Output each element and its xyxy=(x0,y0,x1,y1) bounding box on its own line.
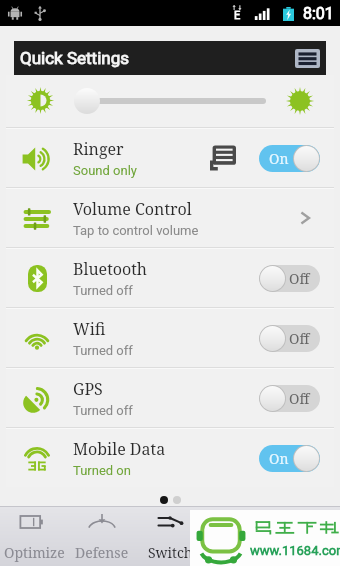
staticText: Turned off xyxy=(73,343,133,358)
staticText: Off xyxy=(289,389,310,408)
button[interactable]: Bluetooth xyxy=(6,249,334,307)
staticText: Turned off xyxy=(73,403,133,418)
staticText: Bluetooth xyxy=(73,258,148,280)
staticText: Turned on xyxy=(73,463,131,478)
button[interactable]: Optimize xyxy=(0,512,68,562)
button[interactable]: Menu xyxy=(295,49,320,68)
staticText: Sound only xyxy=(73,163,137,178)
staticText: 8:01 xyxy=(303,4,334,23)
button[interactable]: Sound profile xyxy=(210,145,236,171)
button[interactable]: On xyxy=(259,145,320,172)
button[interactable]: Off xyxy=(259,265,320,292)
staticText: Switch xyxy=(148,543,193,562)
staticText: www.11684.com xyxy=(250,543,340,558)
button[interactable]: Off xyxy=(259,385,320,412)
button[interactable]: Wifi xyxy=(6,309,334,367)
button[interactable]: Volume Control xyxy=(6,189,334,247)
staticText: On xyxy=(269,149,289,168)
button[interactable]: On xyxy=(259,445,320,472)
button[interactable]: GPS xyxy=(6,369,334,427)
staticText: Wifi xyxy=(73,318,106,340)
button[interactable]: Traffic xyxy=(204,512,272,562)
staticText: GPS xyxy=(73,378,103,400)
staticText: Tap to control volume xyxy=(73,223,199,238)
button[interactable]: Switch xyxy=(136,512,204,562)
button[interactable]: Off xyxy=(259,325,320,352)
staticText: Off xyxy=(289,329,310,348)
staticText: E xyxy=(234,9,241,22)
staticText: Tools xyxy=(289,543,324,562)
staticText: Volume Control xyxy=(73,198,192,220)
staticText: On xyxy=(269,449,289,468)
button[interactable]: Ringer xyxy=(6,129,334,187)
button[interactable]: Mobile Data xyxy=(6,429,334,487)
staticText: Off xyxy=(289,269,310,288)
staticText: Mobile Data xyxy=(73,438,166,460)
staticText: Optimize xyxy=(4,543,65,562)
staticText: Turned off xyxy=(73,283,133,298)
button[interactable] xyxy=(6,75,334,127)
button[interactable]: Defense xyxy=(68,512,136,562)
staticText: Defense xyxy=(75,543,129,562)
staticText: Traffic xyxy=(216,543,260,562)
button[interactable]: Tools xyxy=(272,512,340,562)
staticText: Ringer xyxy=(73,138,124,160)
staticText: Quick Settings xyxy=(20,48,130,68)
